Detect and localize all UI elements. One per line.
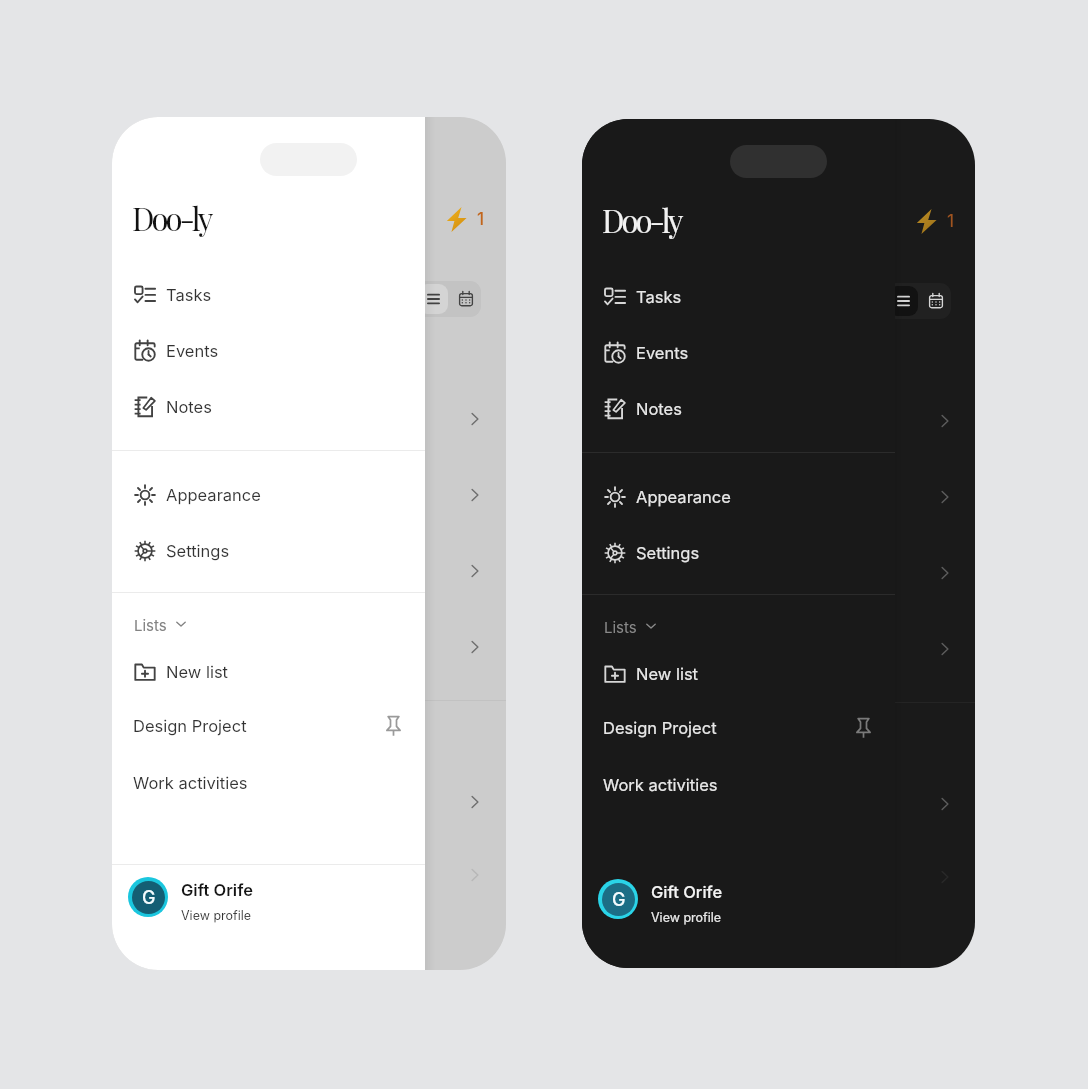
staticText: Events bbox=[636, 343, 689, 363]
button[interactable]: New list bbox=[112, 648, 425, 696]
button[interactable]: Tasks bbox=[582, 273, 895, 321]
staticText: Appearance bbox=[636, 487, 731, 507]
staticText: Settings bbox=[166, 541, 230, 561]
button[interactable]: Tasks bbox=[112, 271, 425, 319]
button[interactable]: Work activities bbox=[112, 759, 425, 807]
button[interactable]: Settings bbox=[582, 529, 895, 577]
staticText: Design Project bbox=[603, 718, 717, 738]
button[interactable]: Design Project bbox=[582, 704, 895, 752]
staticText: Notes bbox=[636, 399, 682, 419]
staticText: Appearance bbox=[166, 485, 261, 505]
staticText: G bbox=[142, 887, 156, 909]
button[interactable]: List view bbox=[888, 286, 918, 316]
button[interactable]: Lists bbox=[112, 607, 187, 643]
button[interactable]: New list bbox=[582, 650, 895, 698]
button[interactable]: Events bbox=[582, 329, 895, 377]
staticText: Work activities bbox=[133, 773, 248, 793]
button[interactable]: Open item bbox=[469, 796, 481, 808]
staticText: Work activities bbox=[603, 775, 718, 795]
button[interactable]: G bbox=[582, 871, 895, 927]
staticText: Design Project bbox=[133, 716, 247, 736]
staticText: Lists bbox=[134, 616, 167, 634]
button[interactable]: Open item bbox=[939, 491, 951, 503]
button[interactable]: Calendar view bbox=[924, 286, 948, 316]
staticText: Events bbox=[166, 341, 219, 361]
button[interactable]: Open item bbox=[469, 413, 481, 425]
button[interactable]: Lists bbox=[582, 609, 657, 645]
staticText: View profile bbox=[181, 908, 252, 923]
button[interactable]: Notes bbox=[112, 383, 425, 431]
staticText: Gift Orife bbox=[651, 882, 723, 902]
button[interactable]: List view bbox=[418, 284, 448, 314]
button[interactable]: Settings bbox=[112, 527, 425, 575]
staticText: 1 bbox=[947, 211, 955, 232]
button[interactable]: Notes bbox=[582, 385, 895, 433]
button[interactable]: Open item bbox=[469, 489, 481, 501]
staticText: Notes bbox=[166, 397, 212, 417]
button[interactable]: Open item bbox=[939, 643, 951, 655]
button[interactable]: Streak bbox=[916, 208, 955, 234]
staticText: Doo-ly bbox=[602, 199, 681, 240]
button[interactable]: Open item bbox=[469, 641, 481, 653]
button[interactable]: Open item bbox=[939, 567, 951, 579]
staticText: Gift Orife bbox=[181, 880, 253, 900]
staticText: New list bbox=[636, 664, 698, 684]
staticText: Tasks bbox=[636, 287, 682, 307]
staticText: Doo-ly bbox=[132, 197, 211, 238]
button[interactable]: Open item bbox=[939, 871, 951, 883]
staticText: View profile bbox=[651, 910, 722, 925]
button[interactable]: Streak bbox=[446, 206, 485, 232]
button[interactable]: Appearance bbox=[582, 473, 895, 521]
staticText: G bbox=[612, 889, 626, 911]
staticText: 1 bbox=[477, 209, 485, 230]
staticText: Settings bbox=[636, 543, 700, 563]
button[interactable]: Events bbox=[112, 327, 425, 375]
button[interactable]: G bbox=[112, 869, 425, 925]
staticText: Lists bbox=[604, 618, 637, 636]
button[interactable]: Open item bbox=[939, 798, 951, 810]
button[interactable]: Open item bbox=[939, 415, 951, 427]
button[interactable]: Open item bbox=[469, 869, 481, 881]
button[interactable]: Work activities bbox=[582, 761, 895, 809]
staticText: Tasks bbox=[166, 285, 212, 305]
staticText: New list bbox=[166, 662, 228, 682]
button[interactable]: Appearance bbox=[112, 471, 425, 519]
button[interactable]: Design Project bbox=[112, 702, 425, 750]
button[interactable]: Calendar view bbox=[454, 284, 478, 314]
button[interactable]: Open item bbox=[469, 565, 481, 577]
